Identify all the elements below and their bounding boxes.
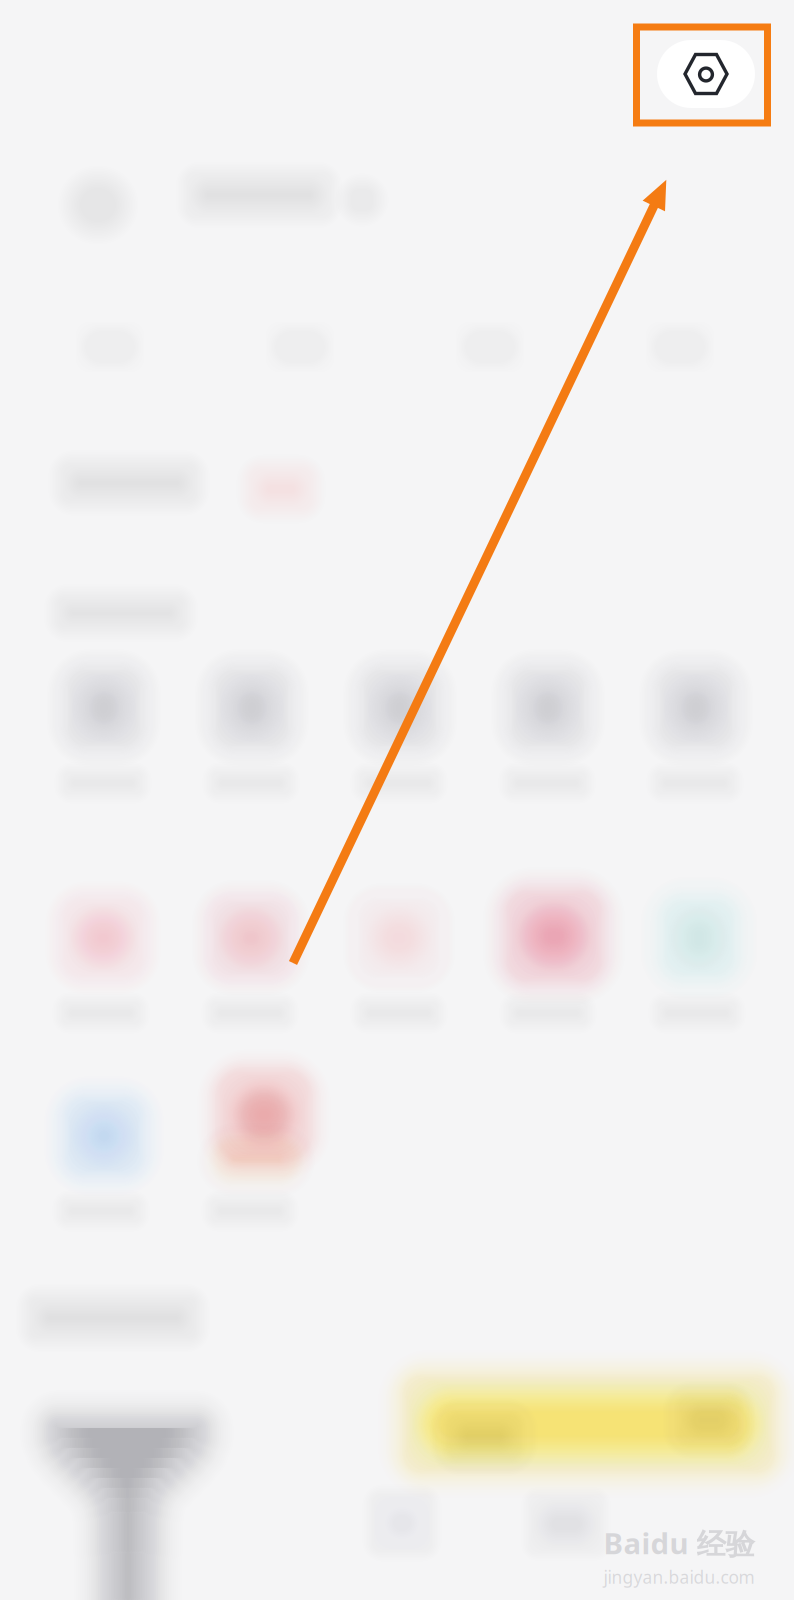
staticText: jingyan.baidu.com [603, 1565, 754, 1588]
staticText: Baidu 经验 [603, 1523, 754, 1562]
button[interactable]: Settings [657, 40, 755, 108]
